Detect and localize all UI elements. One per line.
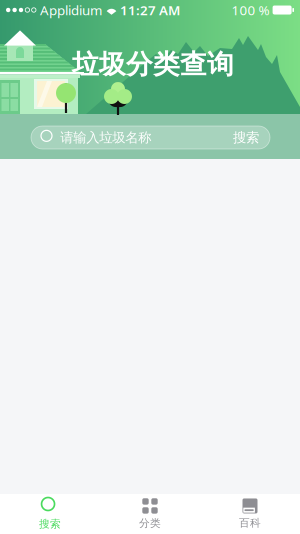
- staticText: 搜索: [39, 517, 61, 530]
- staticText: 分类: [139, 517, 161, 530]
- staticText: 请输入垃圾名称: [60, 129, 151, 146]
- staticText: 百科: [239, 516, 261, 529]
- button[interactable]: 搜索: [0, 494, 100, 534]
- staticText: 垃圾分类查询: [72, 48, 234, 81]
- button[interactable]: 百科: [200, 494, 300, 534]
- staticText: 搜索: [233, 129, 259, 146]
- button[interactable]: 请输入垃圾名称: [31, 126, 270, 149]
- button[interactable]: 分类: [100, 494, 200, 534]
- staticText: 100 %: [232, 1, 270, 19]
- staticText: 11:27 AM: [120, 1, 180, 19]
- staticText: Applidium: [40, 1, 102, 19]
